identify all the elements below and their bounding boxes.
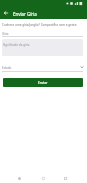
staticText: Enviar <box>38 81 48 85</box>
button[interactable]: Gíria <box>0 30 87 37</box>
staticText: Estado <box>2 66 12 70</box>
button[interactable]: Recents <box>61 174 70 183</box>
button[interactable]: Significado da gíria <box>2 39 83 56</box>
button[interactable]: Estado <box>0 62 87 72</box>
button[interactable]: Enviar <box>3 78 83 87</box>
staticText: Enviar Gíria <box>13 11 37 17</box>
button[interactable]: Home <box>39 174 48 183</box>
staticText: Significado da gíria <box>3 43 30 47</box>
button[interactable]: Back <box>15 174 24 183</box>
staticText: Conhece uma gíria/jargão? Compartilhe co… <box>2 23 78 27</box>
staticText: Gíria <box>2 32 9 36</box>
button[interactable]: Back <box>1 8 11 18</box>
